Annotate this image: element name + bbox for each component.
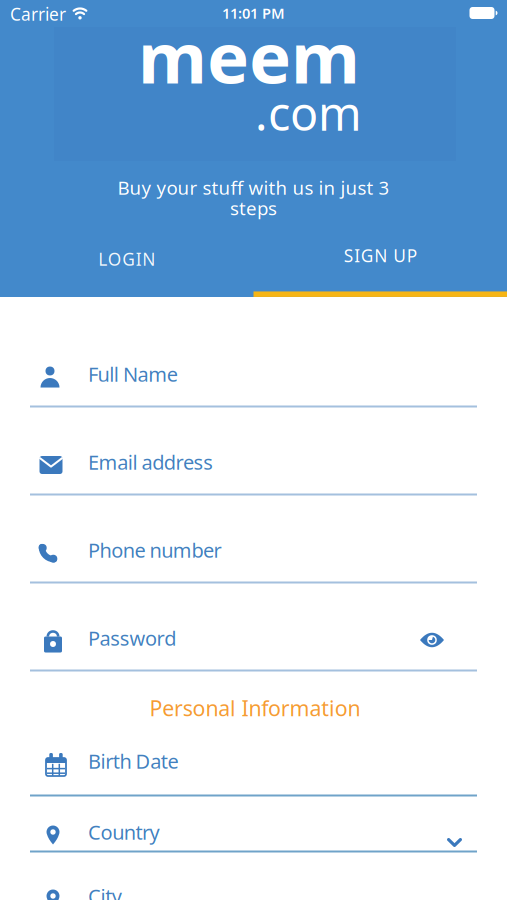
button[interactable]: Select country: [434, 827, 474, 857]
button[interactable]: LOGIN: [0, 237, 253, 281]
staticText: Buy your stuff with us in just 3: [117, 175, 389, 200]
staticText: 11:01 PM: [222, 3, 285, 23]
staticText: SIGN UP: [344, 244, 417, 267]
button[interactable]: Full Name: [0, 342, 507, 406]
staticText: Full Name: [88, 361, 178, 387]
staticText: Personal Information: [149, 694, 361, 722]
staticText: Birth Date: [88, 748, 178, 774]
staticText: Country: [88, 819, 160, 845]
staticText: Phone number: [88, 537, 222, 563]
staticText: Password: [88, 625, 176, 651]
staticText: meem: [138, 9, 360, 103]
button[interactable]: SIGN UP: [253, 233, 507, 277]
staticText: Carrier: [10, 2, 66, 25]
staticText: City: [88, 883, 122, 900]
button[interactable]: City: [0, 864, 507, 900]
button[interactable]: Email address: [0, 430, 507, 494]
staticText: Email address: [88, 449, 213, 475]
button[interactable]: Password: [0, 606, 507, 670]
button[interactable]: Country: [0, 800, 507, 864]
staticText: .com: [255, 82, 362, 144]
button[interactable]: Phone number: [0, 518, 507, 582]
staticText: steps: [230, 196, 277, 220]
button[interactable]: Show password: [410, 623, 454, 657]
staticText: LOGIN: [98, 247, 155, 270]
button[interactable]: Birth Date: [0, 729, 507, 793]
